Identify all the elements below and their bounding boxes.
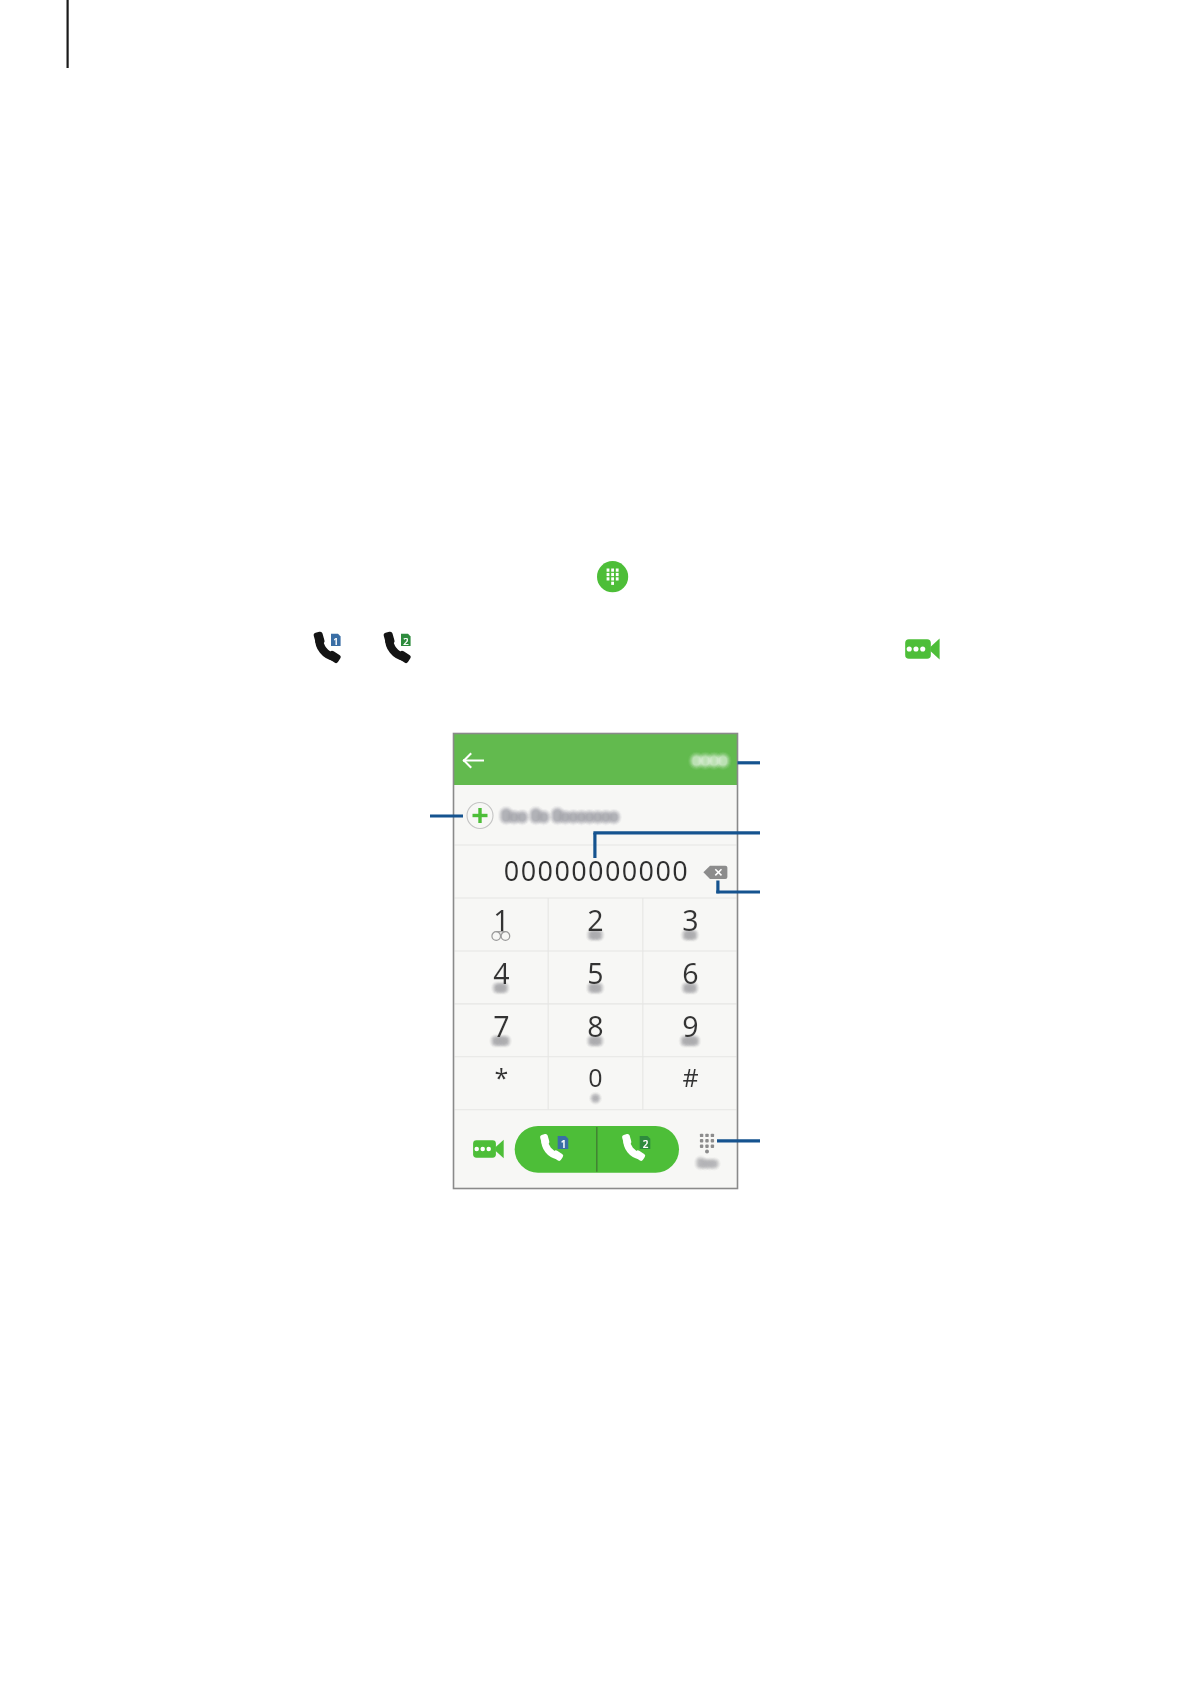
button[interactable]: Key # bbox=[643, 1057, 738, 1110]
staticText: 2 bbox=[401, 635, 411, 648]
button[interactable]: Key 4 bbox=[454, 951, 549, 1004]
button[interactable]: Backspace bbox=[699, 856, 737, 892]
staticText: 3 bbox=[643, 901, 738, 940]
staticText: 6 bbox=[643, 954, 738, 993]
button[interactable]: Key 3 bbox=[643, 898, 738, 951]
staticText: 5 bbox=[548, 954, 643, 993]
button[interactable]: Back bbox=[456, 736, 500, 786]
button[interactable]: Call with SIM 2 bbox=[597, 1126, 679, 1173]
button[interactable]: Key 9 bbox=[643, 1004, 738, 1057]
staticText: 1 bbox=[331, 635, 341, 648]
staticText: * bbox=[454, 1060, 549, 1094]
button[interactable]: Key * bbox=[454, 1057, 549, 1110]
staticText: 1 bbox=[454, 901, 549, 940]
staticText: 7 bbox=[454, 1007, 549, 1046]
staticText: 9 bbox=[643, 1007, 738, 1046]
button[interactable]: Key 7 bbox=[454, 1004, 549, 1057]
staticText: 2 bbox=[548, 901, 643, 940]
button[interactable]: More options bbox=[678, 736, 736, 786]
button[interactable]: Key 8 bbox=[548, 1004, 643, 1057]
button[interactable]: Video call bbox=[466, 1128, 504, 1166]
button[interactable]: Key 1 bbox=[454, 898, 549, 951]
button[interactable]: Key 6 bbox=[643, 951, 738, 1004]
button[interactable]: Hide keypad bbox=[690, 1122, 734, 1174]
button[interactable]: Add to Contacts bbox=[456, 788, 736, 844]
staticText: 8 bbox=[548, 1007, 643, 1046]
button[interactable]: Key 0 bbox=[548, 1057, 643, 1110]
button[interactable]: Key 2 bbox=[548, 898, 643, 951]
staticText: 00000000000 bbox=[500, 852, 693, 889]
staticText: # bbox=[643, 1060, 738, 1094]
staticText: 1 bbox=[558, 1137, 569, 1151]
staticText: 4 bbox=[454, 954, 549, 993]
staticText: 2 bbox=[640, 1137, 651, 1151]
button[interactable]: Key 5 bbox=[548, 951, 643, 1004]
staticText: 0 bbox=[548, 1060, 643, 1094]
button[interactable]: Call with SIM 1 bbox=[515, 1126, 597, 1173]
